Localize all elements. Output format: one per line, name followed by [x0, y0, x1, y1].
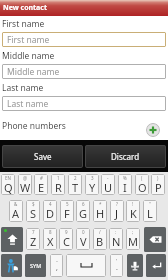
- staticText: V: [80, 234, 87, 249]
- button[interactable]: S: [26, 200, 40, 222]
- staticText: 7: [32, 229, 35, 235]
- staticText: X: [47, 234, 54, 249]
- staticText: Phone numbers: [2, 120, 66, 132]
- button[interactable]: Add phone number: [146, 123, 160, 137]
- staticText: 4: [49, 201, 52, 207]
- button[interactable]: Discard: [85, 145, 166, 168]
- button[interactable]: Middle name: [2, 64, 166, 79]
- staticText: SYM: [30, 262, 42, 269]
- staticText: .: [116, 263, 118, 273]
- staticText: 6: [82, 201, 85, 207]
- button[interactable]: C: [59, 228, 73, 250]
- staticText: J: [115, 206, 119, 221]
- button[interactable]: J: [110, 200, 124, 222]
- staticText: 5: [66, 201, 69, 207]
- staticText: 2: [74, 175, 77, 181]
- staticText: 1: [57, 175, 60, 181]
- staticText: Z: [30, 234, 37, 249]
- button[interactable]: H: [93, 200, 107, 222]
- staticText: B: [96, 234, 104, 249]
- staticText: ": [149, 201, 151, 207]
- staticText: -: [56, 257, 58, 265]
- staticText: Middle name: [7, 66, 60, 78]
- button[interactable]: I: [118, 174, 132, 195]
- button[interactable]: K: [126, 200, 140, 222]
- button[interactable]: W: [18, 174, 32, 195]
- staticText: S: [30, 206, 37, 221]
- button[interactable]: First name: [2, 32, 166, 47]
- staticText: First name: [7, 34, 50, 46]
- button[interactable]: E: [34, 174, 48, 195]
- staticText: R: [55, 180, 62, 195]
- button[interactable]: Space: [66, 254, 106, 277]
- button[interactable]: Shift: [1, 227, 23, 252]
- staticText: Discard: [111, 151, 140, 162]
- staticText: P: [155, 180, 162, 195]
- staticText: *: [99, 201, 102, 207]
- staticText: -: [107, 175, 109, 181]
- staticText: /: [99, 229, 101, 235]
- button[interactable]: Q: [1, 174, 15, 195]
- staticText: I: [123, 180, 127, 195]
- staticText: N: [112, 234, 121, 249]
- staticText: 0: [82, 229, 85, 235]
- staticText: C: [63, 234, 70, 249]
- staticText: Q: [4, 180, 13, 195]
- staticText: @: [23, 175, 28, 181]
- staticText: &: [14, 201, 18, 207]
- button[interactable]: V: [76, 228, 90, 250]
- staticText: Y: [89, 180, 96, 195]
- staticText: F: [64, 206, 70, 221]
- button[interactable]: B: [93, 228, 107, 250]
- staticText: 8: [49, 229, 52, 235]
- button[interactable]: .: [110, 254, 123, 277]
- staticText: W: [20, 180, 31, 195]
- staticText: E: [38, 180, 45, 195]
- button[interactable]: A: [9, 200, 23, 222]
- staticText: G: [79, 206, 88, 221]
- staticText: #: [40, 175, 43, 181]
- button[interactable]: M: [126, 228, 140, 250]
- staticText: !: [132, 201, 134, 207]
- staticText: U: [104, 180, 113, 195]
- staticText: ': [116, 257, 118, 265]
- button[interactable]: Symbols: [25, 254, 46, 277]
- button[interactable]: Enter: [146, 254, 166, 277]
- staticText: (: [141, 175, 143, 181]
- staticText: Save: [34, 151, 52, 162]
- staticText: $: [32, 201, 35, 207]
- staticText: %: [123, 175, 127, 181]
- staticText: M: [128, 234, 138, 249]
- button[interactable]: F: [60, 200, 74, 222]
- button[interactable]: R: [51, 174, 65, 195]
- staticText: ,: [56, 263, 58, 273]
- button[interactable]: D: [43, 200, 57, 222]
- staticText: 9: [65, 229, 68, 235]
- button[interactable]: Backspace: [144, 227, 166, 252]
- button[interactable]: T: [68, 174, 82, 195]
- staticText: A: [12, 206, 20, 221]
- button[interactable]: N: [109, 228, 123, 250]
- button[interactable]: Z: [26, 228, 40, 250]
- staticText: Last name: [2, 82, 44, 94]
- button[interactable]: L: [143, 200, 157, 222]
- button[interactable]: Save: [2, 145, 83, 168]
- button[interactable]: Y: [85, 174, 99, 195]
- staticText: New contact: [3, 3, 47, 13]
- button[interactable]: P: [151, 174, 165, 195]
- button[interactable]: Handwriting input: [1, 254, 22, 277]
- staticText: O: [138, 180, 147, 195]
- button[interactable]: G: [76, 200, 90, 222]
- staticText: T: [72, 180, 79, 195]
- staticText: ;: [132, 229, 134, 235]
- staticText: Last name: [7, 98, 49, 110]
- staticText: K: [130, 206, 137, 221]
- button[interactable]: ,: [50, 254, 63, 277]
- button[interactable]: Last name: [2, 96, 166, 111]
- button[interactable]: U: [101, 174, 115, 195]
- button[interactable]: X: [43, 228, 57, 250]
- staticText: First name: [2, 18, 45, 30]
- staticText: ?: [116, 201, 118, 207]
- button[interactable]: Voice input: [127, 254, 143, 277]
- button[interactable]: O: [135, 174, 149, 195]
